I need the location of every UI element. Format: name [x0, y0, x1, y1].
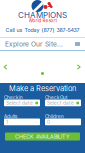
button[interactable]: Menu — [75, 42, 80, 46]
button[interactable]: Next slide — [77, 64, 82, 70]
staticText: 1 — [6, 119, 8, 125]
button[interactable]: Previous slide — [3, 64, 8, 70]
staticText: Select date — [47, 100, 74, 106]
staticText: Make a Reservation — [9, 84, 76, 93]
staticText: Children — [45, 114, 64, 119]
staticText: Adults — [4, 114, 17, 119]
staticText: Call us Today (877) 387-5437 — [5, 27, 79, 33]
staticText: CHECK AVAILABILITY — [15, 133, 70, 140]
staticText: 0 — [47, 119, 50, 125]
staticText: Explore Our Site... — [5, 40, 63, 48]
staticText: CHAMPIONS — [18, 10, 67, 20]
button[interactable]: CHECK AVAILABILITY — [5, 132, 80, 140]
staticText: World Resort — [28, 18, 56, 23]
staticText: Check Out — [45, 95, 67, 100]
staticText: Select date — [6, 100, 33, 106]
staticText: Check in — [4, 95, 23, 100]
